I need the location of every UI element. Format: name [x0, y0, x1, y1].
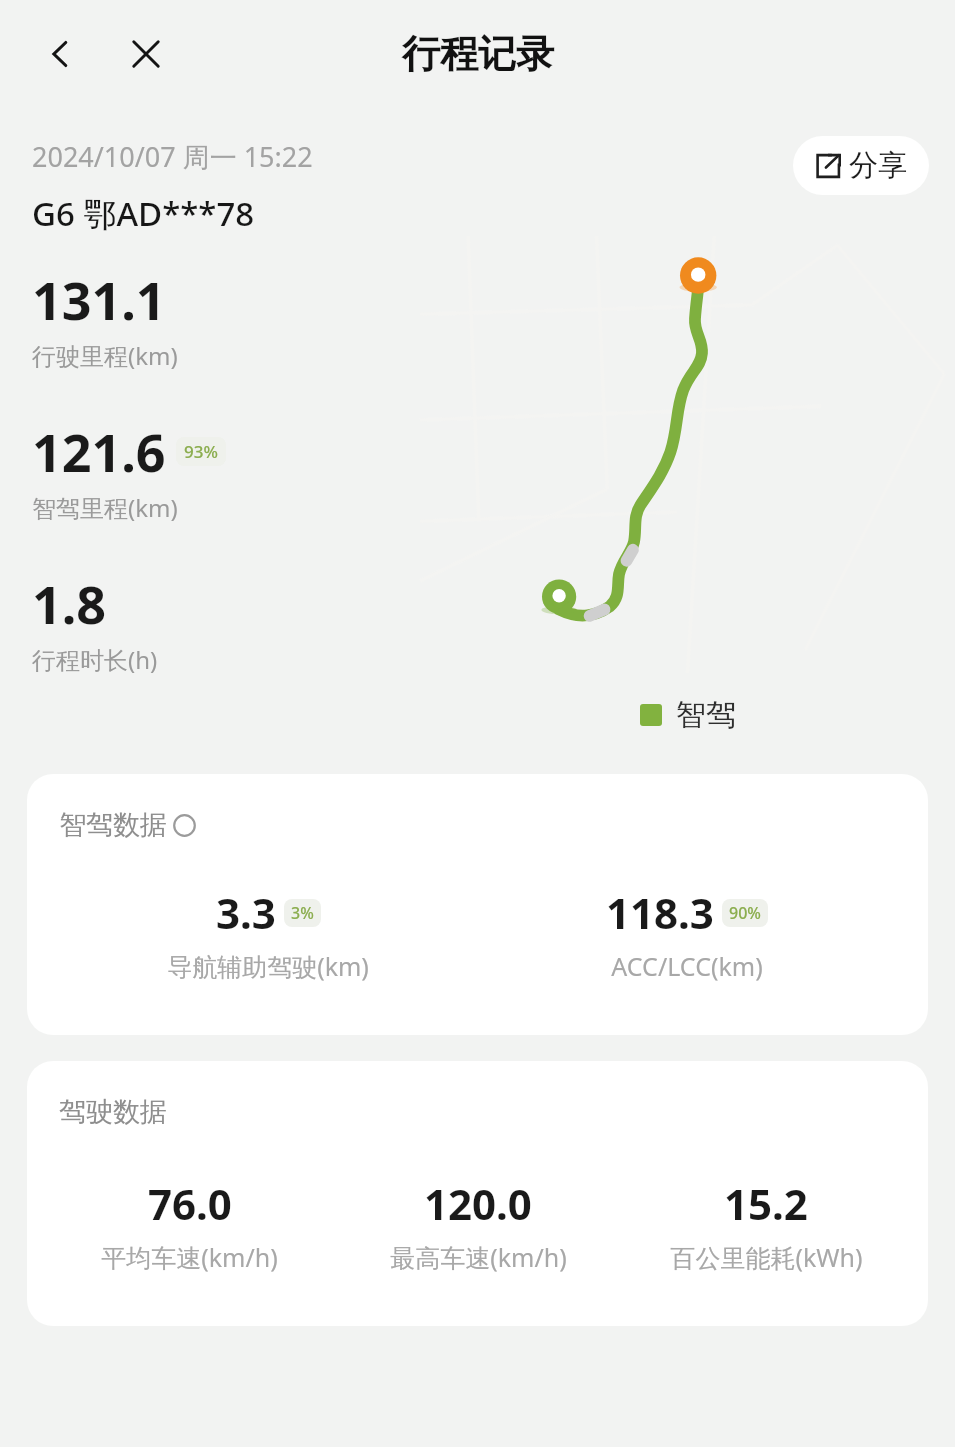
staticText: 百公里能耗(kWh)	[670, 1240, 863, 1274]
staticText: 120.0	[424, 1175, 532, 1232]
staticText: 76.0	[148, 1175, 232, 1232]
staticText: 131.1	[32, 264, 166, 335]
staticText: 智驾	[676, 696, 736, 734]
staticText: 90%	[729, 902, 761, 924]
staticText: 121.6	[32, 416, 166, 487]
staticText: 15.2	[724, 1175, 808, 1232]
staticText: 3%	[291, 902, 314, 924]
staticText: 导航辅助驾驶(km)	[167, 949, 369, 983]
staticText: 行程记录	[402, 30, 554, 78]
staticText: 3.3	[216, 884, 276, 941]
button[interactable]: Back	[32, 26, 88, 82]
staticText: 智驾里程(km)	[32, 491, 178, 524]
staticText: 93%	[184, 440, 218, 463]
staticText: ACC/LCC(km)	[611, 949, 763, 983]
staticText: 行程时长(h)	[32, 643, 158, 676]
button[interactable]: Close	[118, 26, 174, 82]
staticText: 分享	[849, 147, 907, 184]
staticText: G6 鄂AD***78	[32, 191, 255, 236]
button[interactable]: 分享	[793, 136, 929, 195]
staticText: 平均车速(km/h)	[101, 1240, 278, 1274]
button[interactable]: 智驾数据	[27, 774, 928, 1035]
button[interactable]: 驾驶数据	[27, 1061, 928, 1326]
staticText: 智驾数据	[59, 808, 167, 842]
staticText: 行驶里程(km)	[32, 339, 178, 372]
staticText: 118.3	[606, 884, 714, 941]
staticText: 最高车速(km/h)	[390, 1240, 567, 1274]
staticText: 2024/10/07 周一 15:22	[32, 138, 313, 175]
staticText: 1.8	[32, 568, 107, 639]
staticText: 驾驶数据	[59, 1095, 167, 1129]
